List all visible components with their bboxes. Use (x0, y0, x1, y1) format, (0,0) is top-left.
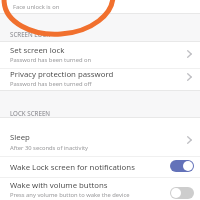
staticText: Privacy protection password (10, 69, 114, 80)
staticText: Set screen lock (10, 45, 65, 56)
staticText: After 30 seconds of inactivity (10, 144, 89, 152)
staticText: Wake with volume buttons (10, 180, 108, 191)
staticText: Password has been turned off (10, 80, 92, 88)
staticText: LOCK SCREEN (10, 109, 51, 117)
staticText: Password has been turned on (10, 56, 92, 64)
button[interactable]: Privacy protection password (0, 69, 200, 90)
button[interactable] (170, 187, 194, 199)
staticText: Face unlock is on (13, 3, 60, 11)
staticText: Press any volume button to wake the devi… (10, 191, 130, 199)
button[interactable]: Sleep (0, 118, 200, 156)
button[interactable]: Face unlock (0, 0, 200, 13)
button[interactable]: Set screen lock (0, 42, 200, 68)
staticText: SCREEN LOCK (10, 30, 51, 38)
staticText: Wake Lock screen for notifications (10, 162, 135, 173)
button[interactable]: Wake Lock screen for notifications (0, 157, 200, 177)
staticText: Sleep (10, 132, 30, 143)
button[interactable]: Wake with volume buttons (0, 178, 200, 200)
button[interactable] (170, 160, 194, 172)
